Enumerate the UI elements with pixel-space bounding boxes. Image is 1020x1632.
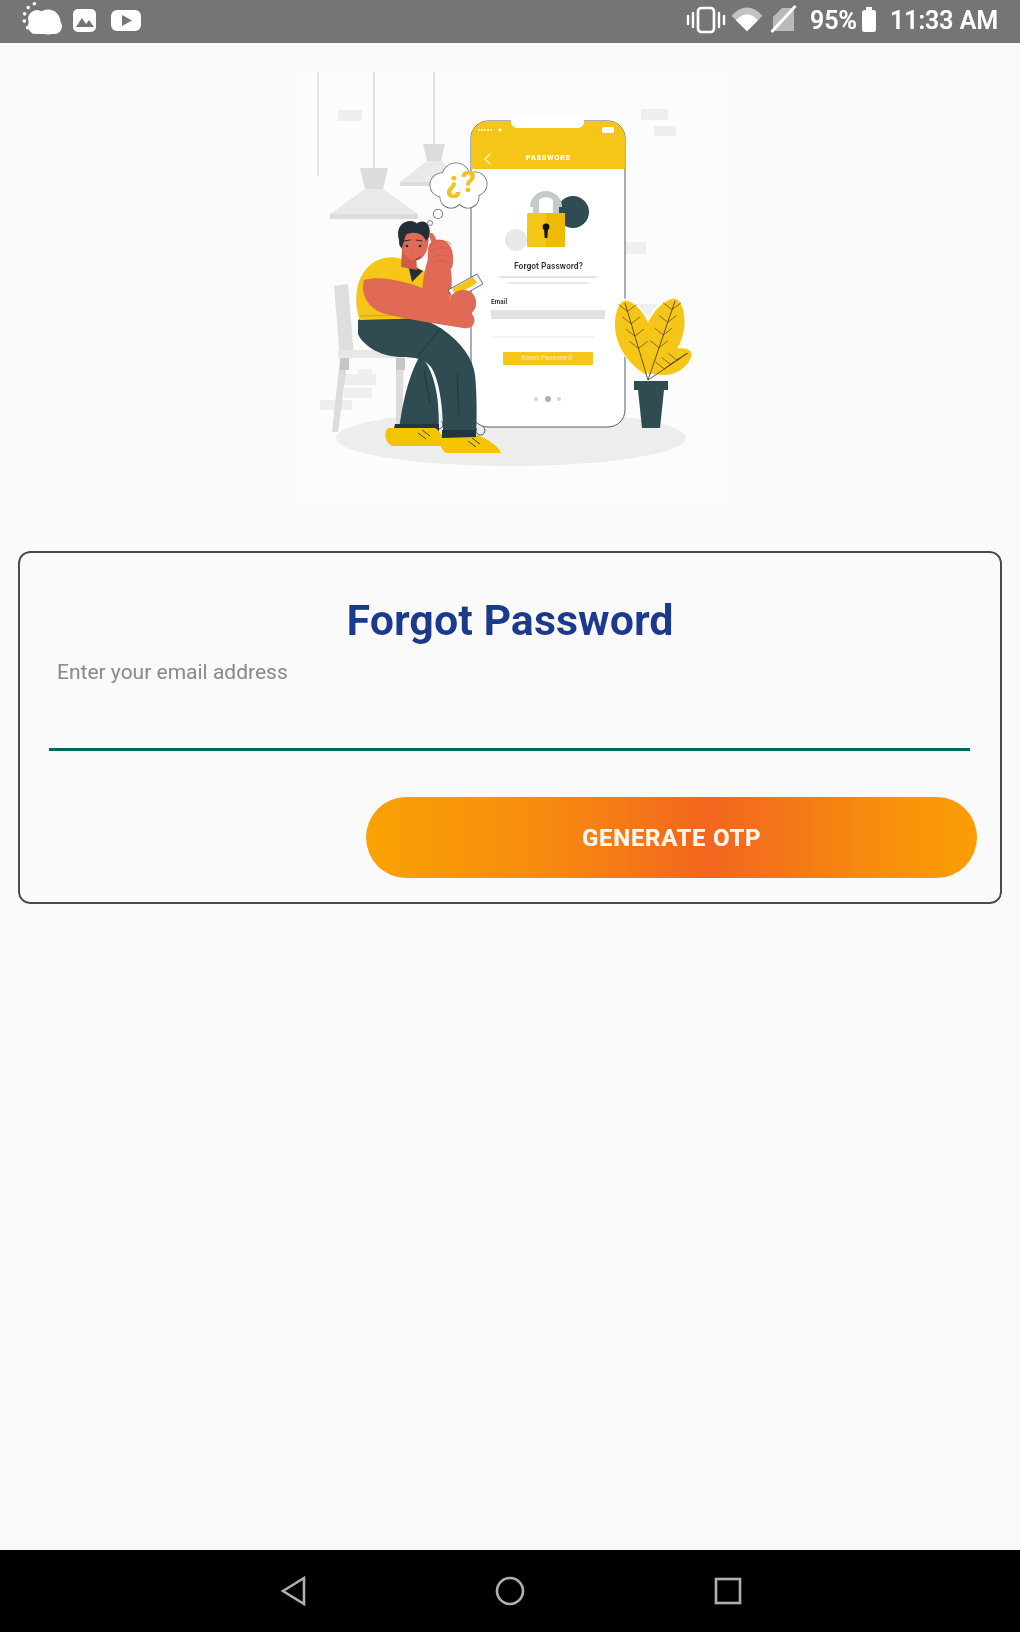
button[interactable]: Recents — [688, 1551, 768, 1631]
staticText: ¿? — [446, 164, 476, 199]
staticText: Email — [491, 298, 508, 306]
staticText: Forgot Password? — [514, 261, 583, 271]
staticText: 11:33 AM — [890, 6, 999, 35]
staticText: PASSWORD — [526, 154, 572, 162]
button[interactable]: Enter your email address — [49, 660, 970, 751]
staticText: GENERATE OTP — [582, 824, 762, 852]
button[interactable]: Back — [254, 1551, 334, 1631]
staticText: Enter your email address — [57, 660, 288, 685]
button[interactable]: Home — [470, 1551, 550, 1631]
button[interactable]: GENERATE OTP — [366, 797, 977, 878]
staticText: Reset Password — [521, 354, 572, 362]
staticText: 95% — [810, 6, 857, 35]
staticText: Forgot Password — [18, 595, 1002, 645]
